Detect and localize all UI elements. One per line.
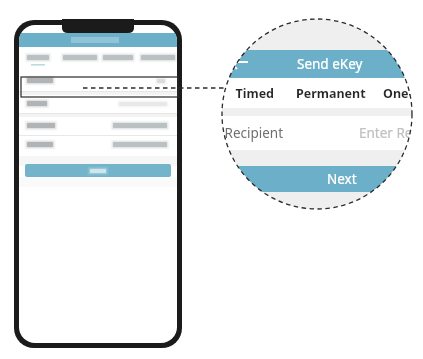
button[interactable]: Send eKey screen illustration <box>0 0 423 359</box>
